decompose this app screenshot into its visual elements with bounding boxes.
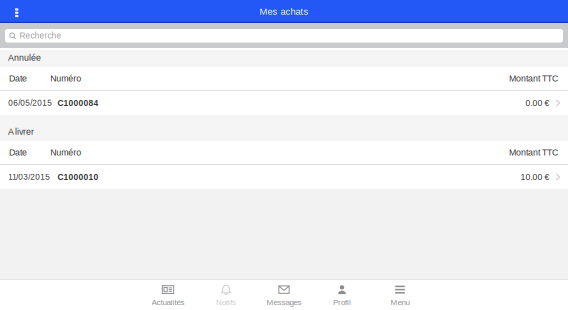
button[interactable]: Recherche <box>5 29 563 42</box>
staticText: C1000010 <box>58 172 99 182</box>
button[interactable]: 06/05/2015 <box>0 91 568 115</box>
button[interactable]: Notifs <box>197 279 255 310</box>
button[interactable]: Messages <box>255 279 313 310</box>
staticText: Actualités <box>151 298 184 307</box>
staticText: Recherche <box>19 31 61 40</box>
button[interactable]: 11/03/2015 <box>0 165 568 189</box>
staticText: 06/05/2015 <box>8 98 52 108</box>
staticText: Profil <box>333 298 351 307</box>
staticText: A livrer <box>8 127 34 137</box>
staticText: Montant TTC <box>509 74 558 83</box>
staticText: Annulée <box>8 53 41 63</box>
staticText: Notifs <box>216 298 236 307</box>
staticText: Numéro <box>50 74 81 83</box>
staticText: Numéro <box>50 148 81 157</box>
staticText: 0.00 € <box>525 98 549 108</box>
button[interactable]: Menu <box>0 0 33 24</box>
button[interactable]: Profil <box>313 279 371 310</box>
staticText: Date <box>9 74 27 83</box>
staticText: Mes achats <box>259 6 308 17</box>
button[interactable]: Menu <box>371 279 429 310</box>
staticText: 11/03/2015 <box>8 172 50 182</box>
staticText: Menu <box>390 298 409 307</box>
staticText: 10.00 € <box>520 172 549 182</box>
staticText: Montant TTC <box>509 148 558 157</box>
staticText: Messages <box>266 298 301 307</box>
staticText: Date <box>9 148 27 157</box>
staticText: C1000084 <box>58 98 99 108</box>
button[interactable]: Actualités <box>139 279 197 310</box>
